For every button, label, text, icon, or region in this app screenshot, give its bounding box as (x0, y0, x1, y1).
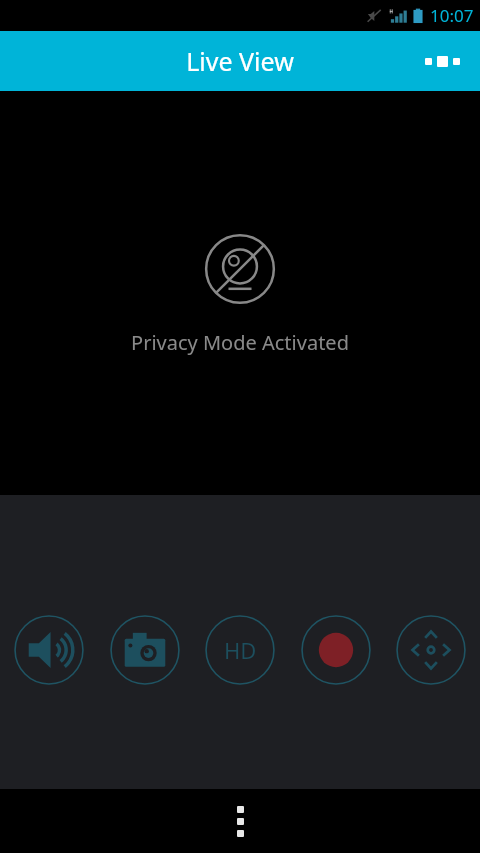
button[interactable]: Pan and tilt (392, 611, 470, 689)
button[interactable]: Snapshot (106, 611, 184, 689)
staticText: HD (224, 635, 257, 665)
staticText: Live View (186, 44, 294, 78)
button[interactable]: Menu (216, 797, 264, 845)
staticText: Privacy Mode Activated (131, 329, 349, 356)
button[interactable]: HD (201, 611, 279, 689)
button[interactable]: Speaker (10, 611, 88, 689)
button[interactable]: More options (418, 37, 466, 85)
staticText: 10:07 (430, 4, 474, 27)
button[interactable]: Record (297, 611, 375, 689)
